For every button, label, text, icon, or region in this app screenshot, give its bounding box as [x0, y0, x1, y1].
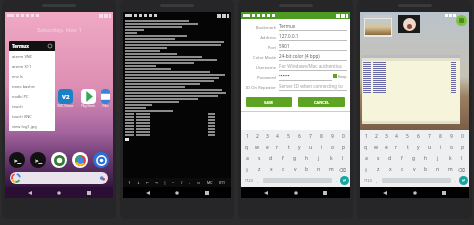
button[interactable]: Play Store — [78, 89, 98, 108]
button[interactable]: Terminal — [30, 152, 46, 168]
button[interactable]: Recents — [320, 188, 330, 198]
button[interactable]: g — [289, 153, 301, 164]
button[interactable]: 8 — [435, 131, 446, 142]
button[interactable]: Back — [143, 188, 153, 198]
button[interactable]: d — [384, 153, 396, 164]
button[interactable]: m — [444, 164, 456, 175]
button[interactable]: o — [446, 142, 457, 153]
button[interactable]: MC — [206, 180, 214, 185]
button[interactable]: 2 — [371, 131, 381, 142]
button[interactable]: env ls — [9, 71, 55, 81]
button[interactable]: y — [294, 142, 305, 153]
button[interactable]: ⇧ — [361, 164, 372, 175]
button[interactable]: → — [154, 181, 159, 185]
button[interactable]: a — [242, 153, 253, 164]
button[interactable]: Back — [380, 188, 390, 198]
button[interactable]: 8 — [316, 131, 327, 142]
button[interactable]: p — [338, 142, 349, 153]
button[interactable]: 5 — [402, 131, 413, 142]
button[interactable]: CANCEL — [298, 97, 345, 107]
button[interactable]: ~ — [171, 180, 176, 185]
button[interactable]: ?123 — [361, 178, 374, 183]
button[interactable]: aterm X11 — [9, 61, 55, 71]
button[interactable]: l — [337, 153, 349, 164]
button[interactable]: Back — [25, 188, 35, 198]
button[interactable]: 0 — [457, 131, 468, 142]
button[interactable]: j — [432, 153, 444, 164]
button[interactable]: Search — [10, 172, 108, 184]
button[interactable]: u — [305, 142, 316, 153]
button[interactable]: s — [253, 153, 265, 164]
button[interactable]: e — [381, 142, 391, 153]
button[interactable] — [398, 15, 420, 33]
button[interactable]: Termux — [12, 43, 52, 49]
button[interactable]: l — [456, 153, 468, 164]
button[interactable]: ▭ — [196, 181, 202, 185]
button[interactable]: touch — [9, 101, 55, 111]
button[interactable]: x — [384, 164, 396, 175]
button[interactable]: nodki PC — [9, 91, 55, 101]
button[interactable]: . — [334, 178, 340, 183]
button[interactable]: 7 — [424, 131, 435, 142]
button[interactable]: view log1.jpg — [9, 121, 55, 131]
button[interactable]: t — [283, 142, 294, 153]
button[interactable]: v — [289, 164, 301, 175]
button[interactable]: Settings — [93, 152, 109, 168]
button[interactable]: ↑ — [127, 181, 132, 185]
button[interactable]: 6 — [413, 131, 424, 142]
button[interactable]: q — [361, 142, 371, 153]
button[interactable]: n — [432, 164, 444, 175]
button[interactable]: 9 — [327, 131, 338, 142]
button[interactable]: SAVE — [246, 97, 292, 107]
button[interactable]: 9 — [446, 131, 457, 142]
button[interactable]: a — [361, 153, 372, 164]
button[interactable]: - — [188, 180, 192, 185]
button[interactable]: z — [372, 164, 384, 175]
button[interactable]: | — [163, 180, 167, 185]
button[interactable]: , — [255, 178, 261, 183]
button[interactable]: q — [242, 142, 252, 153]
button[interactable]: 4 — [391, 131, 402, 142]
button[interactable]: VNC controls — [456, 15, 467, 26]
button[interactable]: j — [313, 153, 325, 164]
button[interactable]: Home — [54, 188, 64, 198]
button[interactable]: Enter — [340, 176, 349, 185]
button[interactable]: Files — [101, 89, 110, 108]
button[interactable]: Recents — [439, 188, 449, 198]
button[interactable]: c — [277, 164, 289, 175]
button[interactable]: h — [420, 153, 432, 164]
button[interactable]: r — [391, 142, 402, 153]
button[interactable]: w — [371, 142, 381, 153]
button[interactable]: r — [272, 142, 283, 153]
button[interactable]: 5 — [283, 131, 294, 142]
button[interactable]: f — [396, 153, 408, 164]
button[interactable]: u — [424, 142, 435, 153]
button[interactable]: d — [265, 153, 277, 164]
button[interactable]: ⌫ — [337, 164, 349, 175]
button[interactable]: 6 — [294, 131, 305, 142]
button[interactable]: App — [51, 152, 67, 168]
button[interactable]: f — [277, 153, 289, 164]
button[interactable]: 7 — [305, 131, 316, 142]
button[interactable]: t — [402, 142, 413, 153]
button[interactable]: h — [301, 153, 313, 164]
button[interactable]: b — [420, 164, 432, 175]
button[interactable]: b — [301, 164, 313, 175]
button[interactable]: x — [265, 164, 277, 175]
button[interactable]: z — [253, 164, 265, 175]
button[interactable]: k — [444, 153, 456, 164]
button[interactable]: Termux — [9, 152, 25, 168]
button[interactable]: 4 — [272, 131, 283, 142]
button[interactable]: 2 — [252, 131, 262, 142]
button[interactable]: aterm VNC — [9, 51, 55, 61]
button[interactable]: ?123 — [242, 178, 255, 183]
button[interactable]: ↓ — [136, 181, 141, 185]
button[interactable]: i — [316, 142, 327, 153]
button[interactable]: Enter — [459, 176, 468, 185]
button[interactable]: nano bashrc — [9, 81, 55, 91]
button[interactable]: Recents — [202, 188, 212, 198]
button[interactable]: v — [408, 164, 420, 175]
button[interactable]: 3 — [381, 131, 391, 142]
